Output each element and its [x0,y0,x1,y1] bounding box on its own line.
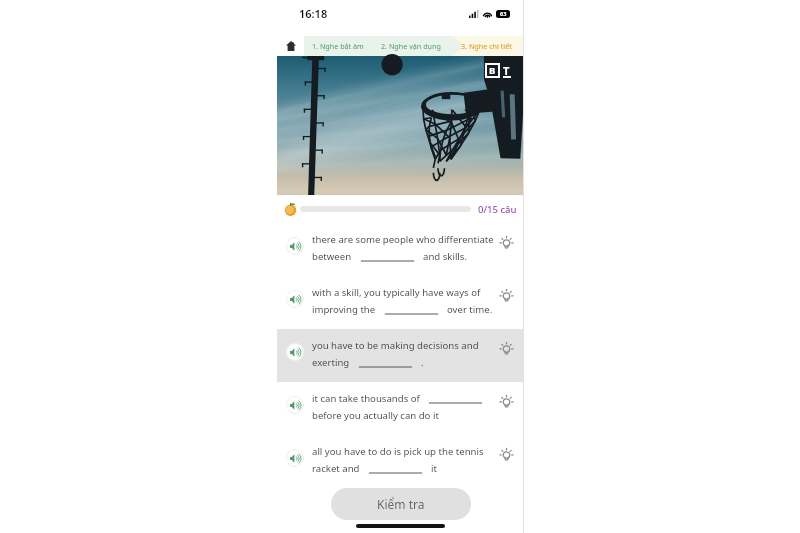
button[interactable]: Play audio [286,343,304,361]
button[interactable]: Play audio [286,396,304,414]
button[interactable]: Hint [498,394,515,411]
staticText: 1. Nghe bắt âm [312,41,364,51]
button[interactable]: Kiểm tra [331,488,471,520]
button[interactable]: Hint [498,447,515,464]
staticText: T [503,63,510,78]
staticText: with a skill, you typically have ways of [312,286,481,299]
staticText: it [431,462,437,475]
staticText: it can take thousands of [312,392,420,405]
button[interactable]: Home [277,36,304,56]
staticText: all you have to do is pick up the tennis [312,445,484,458]
button[interactable]: Play audio [277,382,524,435]
staticText: 63 [500,10,507,18]
staticText: Kiểm tra [377,496,425,512]
staticText: and skills. [423,250,468,263]
button[interactable]: Play audio [277,329,524,382]
button[interactable]: Hint [498,235,515,252]
staticText: racket and [312,462,360,475]
button[interactable]: 2. Nghe vận dụng [372,36,449,56]
staticText: 3. Nghe chi tiết [461,41,512,51]
button[interactable]: Play audio [277,223,524,276]
staticText: improving the [312,303,376,316]
button[interactable]: Play audio [286,237,304,255]
staticText: 0/15 câu [478,203,517,216]
staticText: 2. Nghe vận dụng [381,41,441,51]
button[interactable]: 3. Nghe chi tiết [449,36,524,56]
staticText: . [421,356,424,369]
staticText: between [312,250,352,263]
button[interactable]: 1. Nghe bắt âm [304,36,372,56]
staticText: there are some people who differentiate [312,233,493,246]
staticText: you have to be making decisions and [312,339,479,352]
staticText: before you actually can do it [312,409,439,422]
staticText: 16:18 [299,6,328,21]
button[interactable]: Play audio [277,435,524,488]
staticText: exerting [312,356,350,369]
button[interactable]: Hint [498,341,515,358]
button[interactable]: Play audio [286,290,304,308]
button[interactable]: Hint [498,288,515,305]
button[interactable]: Play audio [277,276,524,329]
button[interactable]: Play audio [286,449,304,467]
staticText: B [489,64,496,77]
staticText: over time. [447,303,493,316]
